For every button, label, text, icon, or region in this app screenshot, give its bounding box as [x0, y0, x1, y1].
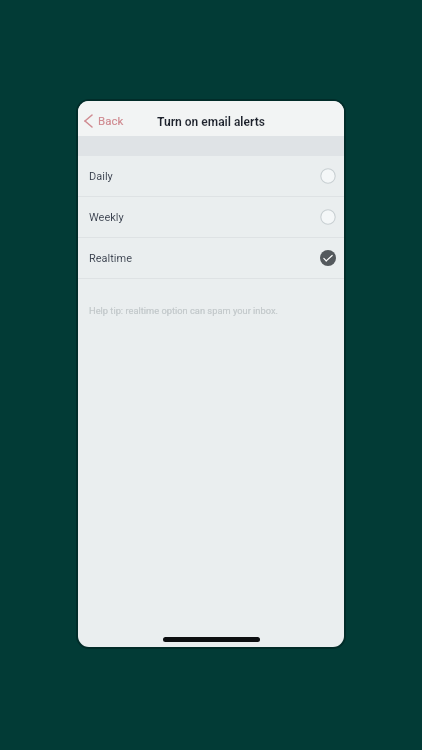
button[interactable]: Weekly — [78, 197, 344, 237]
staticText: Realtime — [89, 252, 133, 265]
staticText: Help tip: realtime option can spam your … — [89, 305, 278, 316]
staticText: Weekly — [89, 211, 124, 224]
button[interactable]: Realtime — [78, 238, 344, 278]
staticText: Back — [98, 114, 124, 127]
staticText: Daily — [89, 170, 113, 183]
other: Not selected — [320, 168, 336, 184]
other: Not selected — [320, 209, 336, 225]
button[interactable]: Back — [81, 109, 127, 131]
staticText: Turn on email alerts — [157, 115, 265, 129]
other: Selected — [320, 250, 336, 266]
button[interactable]: Daily — [78, 156, 344, 196]
